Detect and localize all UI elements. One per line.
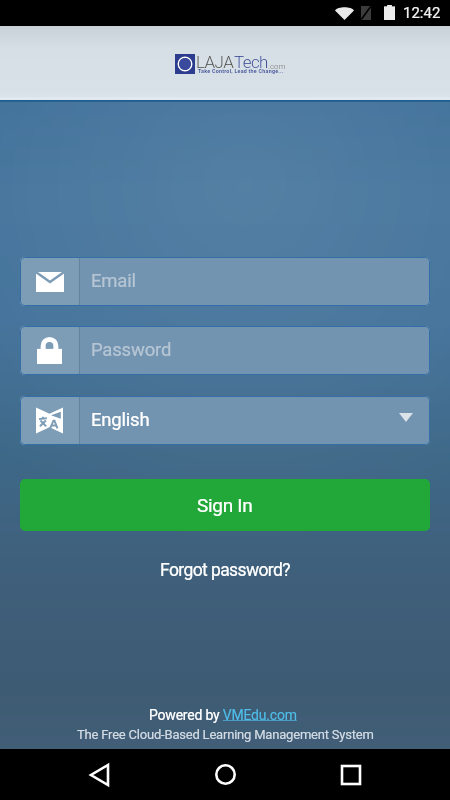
button[interactable]: Home (195, 749, 255, 800)
staticText: LAJA (196, 52, 234, 72)
staticText: Take Control, Lead the Change... (198, 68, 284, 74)
staticText: Forgot password? (160, 560, 290, 581)
staticText: Password (91, 339, 172, 361)
button[interactable]: Forgot password? (150, 556, 300, 585)
staticText: Powered by VMEdu.com (149, 707, 301, 723)
staticText: Sign In (197, 494, 253, 516)
staticText: The Free Cloud-Based Learning Management… (77, 727, 374, 742)
staticText: Email (91, 270, 136, 292)
staticText: Tech (234, 52, 268, 72)
button[interactable]: Password (20, 326, 430, 375)
button[interactable]: Back (69, 749, 129, 800)
staticText: .com (268, 62, 286, 71)
button[interactable]: Email (20, 257, 430, 306)
button[interactable]: Recent apps (321, 749, 381, 800)
staticText: 12:42 (403, 4, 441, 22)
button[interactable]: Sign In (20, 479, 430, 531)
button[interactable]: English (20, 396, 430, 445)
staticText: English (91, 409, 150, 431)
